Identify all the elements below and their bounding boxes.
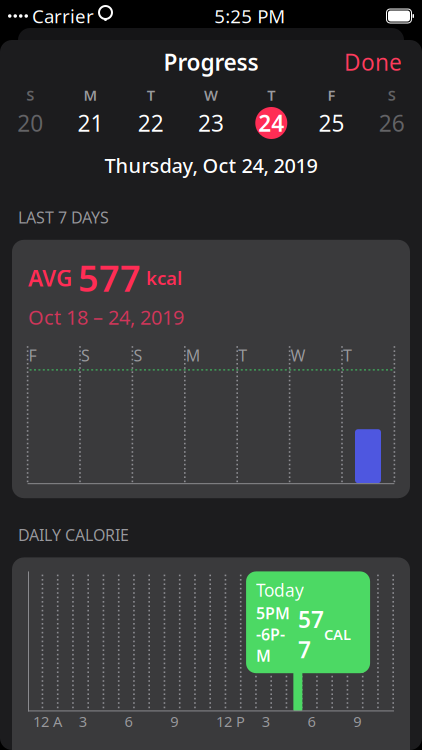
staticText: 5PM-6PM [256, 602, 290, 666]
staticText: S [388, 85, 396, 105]
button[interactable]: 23 [181, 106, 241, 140]
staticText: 6 [307, 712, 315, 731]
button[interactable]: 25 [301, 106, 362, 140]
staticText: 9 [353, 712, 361, 731]
staticText: T [147, 85, 155, 105]
staticText: LAST 7 DAYS [18, 207, 109, 228]
button[interactable]: 20 [0, 106, 60, 140]
staticText: CAL [324, 625, 351, 644]
staticText: 3 [262, 712, 270, 731]
staticText: W [204, 85, 218, 105]
staticText: 21 [77, 108, 103, 138]
staticText: 5:25 PM [214, 4, 285, 28]
staticText: 6 [124, 712, 132, 731]
staticText: 3 [79, 712, 87, 731]
staticText: kcal [141, 265, 182, 290]
staticText: Today [256, 578, 304, 601]
staticText: F [29, 344, 37, 366]
button[interactable]: 24 [241, 106, 301, 140]
staticText: Thursday, Oct 24, 2019 [104, 152, 317, 179]
staticText: 12 A [33, 712, 62, 731]
staticText: DAILY CALORIE [18, 524, 129, 545]
staticText: AVG [28, 263, 78, 293]
staticText: 20 [17, 108, 43, 138]
staticText: 577 [78, 254, 141, 302]
staticText: 23 [198, 108, 224, 138]
staticText: Done [344, 47, 402, 77]
staticText: T [343, 344, 352, 366]
staticText: 12 P [216, 712, 245, 731]
staticText: S [133, 344, 142, 366]
staticText: 577 [298, 604, 324, 664]
staticText: S [26, 85, 34, 105]
staticText: Carrier [32, 4, 94, 28]
staticText: S [81, 344, 90, 366]
staticText: M [83, 85, 97, 105]
staticText: Oct 18 – 24, 2019 [28, 304, 184, 330]
staticText: 24 [258, 108, 284, 138]
staticText: 26 [379, 108, 405, 138]
staticText: T [267, 85, 275, 105]
staticText: F [328, 85, 336, 105]
staticText: T [238, 344, 247, 366]
staticText: 9 [170, 712, 178, 731]
staticText: Progress [163, 47, 258, 77]
staticText: 22 [138, 108, 164, 138]
staticText: 25 [319, 108, 345, 138]
staticText: M [186, 344, 201, 366]
button[interactable]: 22 [121, 106, 181, 140]
button[interactable]: 21 [60, 106, 121, 140]
button[interactable]: 26 [362, 106, 422, 140]
button[interactable]: Done [334, 41, 412, 83]
staticText: W [291, 344, 306, 366]
